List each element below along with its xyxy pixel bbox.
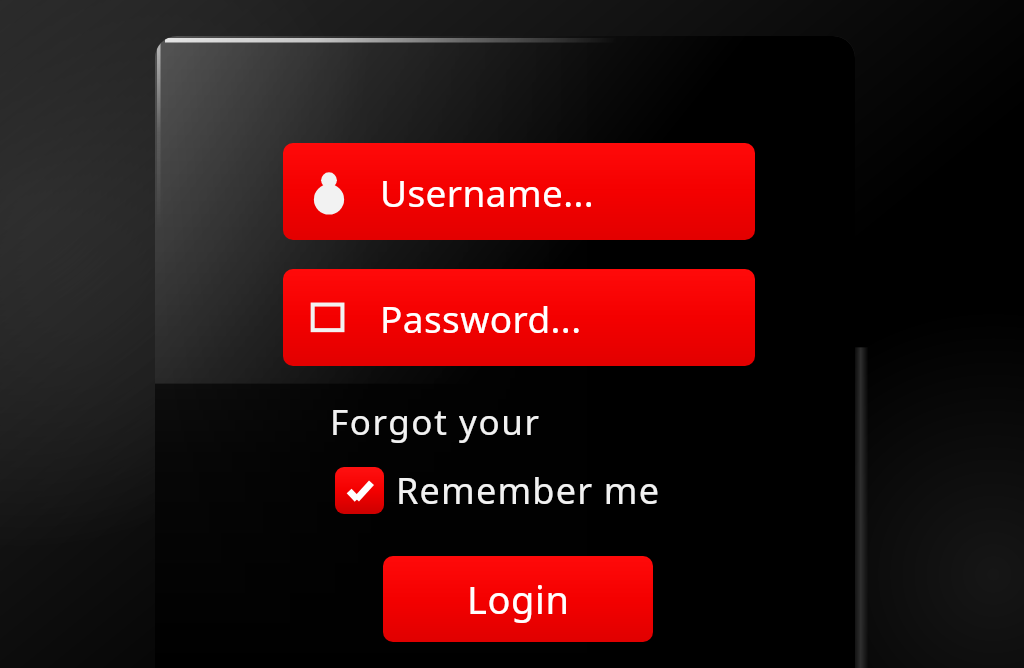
button[interactable]: Remember me	[335, 465, 661, 515]
staticText: Password...	[380, 293, 582, 343]
other: Username...	[305, 168, 353, 216]
staticText: Forgot your password?	[330, 398, 714, 444]
button[interactable]: Forgot your password?	[330, 398, 714, 444]
button[interactable]: Username...	[283, 143, 755, 240]
staticText: Login	[467, 573, 570, 625]
button[interactable]: Password...	[283, 269, 755, 366]
staticText: Remember me	[396, 466, 661, 515]
other: Password...	[305, 294, 353, 342]
button[interactable]: Login	[383, 556, 653, 642]
staticText: Username...	[380, 167, 595, 217]
